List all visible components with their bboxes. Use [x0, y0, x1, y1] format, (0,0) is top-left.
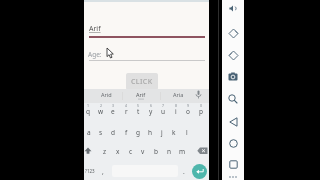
staticText: h: [148, 128, 153, 137]
button[interactable]: m: [176, 145, 188, 158]
button[interactable]: [84, 46, 209, 64]
button[interactable]: w: [95, 105, 107, 118]
button[interactable]: [229, 139, 238, 148]
staticText: 0: [200, 103, 203, 108]
button[interactable]: [195, 90, 202, 100]
button[interactable]: k: [168, 126, 180, 139]
staticText: w: [98, 107, 104, 116]
staticText: Arif: [89, 24, 101, 34]
staticText: d: [111, 128, 115, 137]
button[interactable]: [228, 50, 239, 61]
button[interactable]: q: [82, 105, 94, 118]
staticText: i: [175, 107, 177, 116]
staticText: .: [183, 167, 185, 176]
staticText: 2: [100, 103, 103, 108]
button[interactable]: [192, 164, 207, 179]
button[interactable]: [228, 72, 238, 81]
staticText: 6: [150, 103, 153, 108]
staticText: 1: [87, 103, 90, 108]
staticText: 9: [187, 103, 190, 108]
staticText: f: [125, 128, 128, 137]
button[interactable]: [197, 147, 208, 155]
button[interactable]: s: [95, 126, 107, 139]
button[interactable]: [228, 175, 238, 179]
staticText: v: [141, 147, 145, 156]
button[interactable]: b: [150, 145, 162, 158]
staticText: 3: [112, 103, 115, 108]
staticText: Age:: [88, 50, 102, 59]
staticText: 8: [175, 103, 178, 108]
button[interactable]: y: [145, 105, 157, 118]
button[interactable]: c: [125, 145, 137, 158]
button[interactable]: [228, 28, 239, 39]
staticText: Arid: [101, 91, 112, 98]
button[interactable]: i: [170, 105, 182, 118]
button[interactable]: [229, 117, 238, 127]
button[interactable]: CLICK: [126, 73, 158, 90]
button[interactable]: l: [181, 126, 193, 139]
staticText: t: [137, 107, 140, 116]
button[interactable]: ,: [99, 165, 107, 177]
staticText: ?123: [85, 168, 95, 174]
button[interactable]: a: [83, 126, 95, 139]
staticText: n: [167, 147, 172, 156]
staticText: Arif: [136, 91, 146, 98]
button[interactable]: u: [157, 105, 169, 118]
staticText: 5: [137, 103, 140, 108]
staticText: g: [136, 128, 140, 137]
staticText: 4: [125, 103, 128, 108]
button[interactable]: [84, 147, 92, 155]
button[interactable]: Arif: [131, 89, 151, 100]
staticText: y: [149, 107, 153, 116]
button[interactable]: h: [144, 126, 156, 139]
staticText: r: [125, 107, 128, 116]
button[interactable]: v: [137, 145, 149, 158]
button[interactable]: ?123: [84, 165, 96, 177]
staticText: o: [186, 107, 190, 116]
staticText: e: [111, 107, 115, 116]
staticText: a: [87, 128, 91, 137]
button[interactable]: d: [107, 126, 119, 139]
button[interactable]: t: [132, 105, 144, 118]
button[interactable]: Aria: [168, 89, 188, 100]
button[interactable]: [228, 94, 238, 104]
staticText: c: [129, 147, 133, 156]
staticText: 7: [162, 103, 165, 108]
button[interactable]: g: [132, 126, 144, 139]
button[interactable]: z: [99, 145, 111, 158]
staticText: CLICK: [131, 77, 153, 87]
button[interactable]: p: [195, 105, 207, 118]
button[interactable]: f: [120, 126, 132, 139]
staticText: p: [199, 107, 203, 116]
staticText: Aria: [173, 91, 184, 98]
staticText: z: [103, 147, 107, 156]
button[interactable]: j: [156, 126, 168, 139]
staticText: q: [86, 107, 90, 116]
staticText: s: [99, 128, 103, 137]
button[interactable]: Arid: [96, 89, 116, 100]
staticText: m: [179, 147, 186, 156]
staticText: j: [161, 128, 163, 137]
button[interactable]: [84, 20, 209, 40]
staticText: x: [116, 147, 120, 156]
button[interactable]: e: [107, 105, 119, 118]
button[interactable]: r: [120, 105, 132, 118]
button[interactable]: [229, 5, 238, 13]
staticText: l: [186, 128, 188, 137]
button[interactable]: [229, 160, 238, 169]
staticText: u: [161, 107, 166, 116]
button[interactable]: x: [112, 145, 124, 158]
staticText: b: [154, 147, 158, 156]
staticText: k: [172, 128, 176, 137]
staticText: ,: [102, 167, 104, 176]
button[interactable]: o: [182, 105, 194, 118]
button[interactable]: .: [180, 165, 188, 177]
button[interactable]: n: [163, 145, 175, 158]
